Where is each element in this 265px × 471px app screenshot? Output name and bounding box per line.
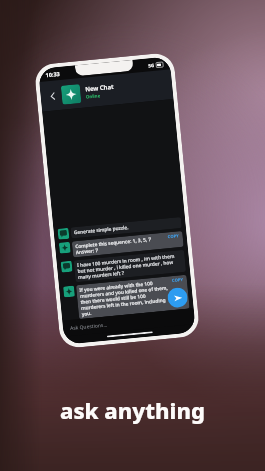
staticText: I have 100 murders in room , im with the…: [77, 252, 183, 280]
button[interactable]: Assistant avatar: [61, 84, 81, 105]
button[interactable]: Ask Questions...: [62, 308, 195, 337]
staticText: 10:33: [45, 70, 61, 78]
staticText: Generate simple puzzle.: [74, 224, 129, 236]
button[interactable]: Back: [45, 88, 60, 103]
staticText: Online: [86, 92, 101, 99]
staticText: COPY: [172, 277, 184, 284]
staticText: If you were already with the 100 murdere…: [79, 278, 171, 317]
staticText: Ask Questions...: [70, 321, 108, 332]
button[interactable]: Complete this sequence: 1, 3, 5, 7 Answe…: [59, 231, 184, 259]
staticText: Complete this sequence: 1, 3, 5, 7 Answe…: [75, 236, 153, 255]
staticText: 5G: [148, 62, 154, 68]
staticText: ask anything: [60, 395, 205, 425]
button[interactable]: Send: [167, 287, 188, 308]
button[interactable]: COPY: [168, 275, 187, 286]
button[interactable]: Generate simple puzzle.: [57, 217, 182, 240]
staticText: New Chat: [85, 83, 114, 93]
button[interactable]: If you were already with the 100 murdere…: [63, 275, 190, 320]
button[interactable]: I have 100 murders in room , im with the…: [61, 250, 186, 284]
button[interactable]: COPY: [164, 231, 183, 243]
staticText: COPY: [167, 233, 180, 240]
